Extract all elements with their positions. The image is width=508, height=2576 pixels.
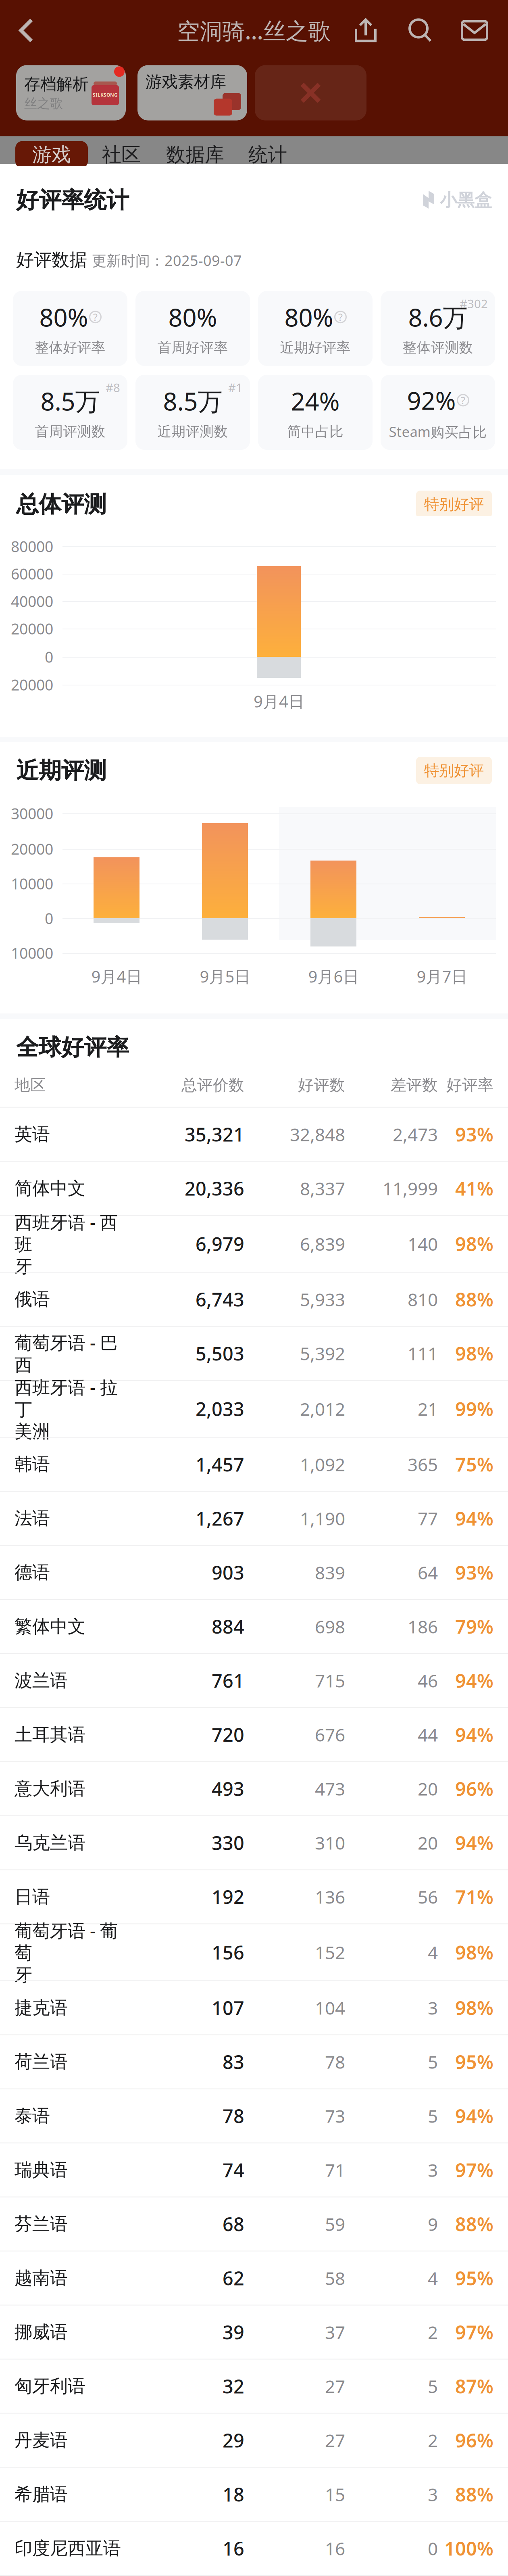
staticText: 4 (428, 2266, 438, 2290)
button[interactable]: Tools (255, 65, 366, 120)
staticText: 4 (428, 1940, 438, 1964)
staticText: 884 (212, 1614, 244, 1639)
staticText: 32,848 (290, 1123, 345, 1146)
staticText: 39 (223, 2320, 244, 2345)
staticText: 79% (455, 1614, 493, 1639)
staticText: 1,267 (196, 1506, 244, 1531)
staticText: 日语 (15, 1886, 50, 1908)
staticText: 94% (455, 1668, 493, 1693)
staticText: 78 (223, 2103, 244, 2128)
staticText: 30000 (11, 803, 53, 823)
staticText: 93% (455, 1560, 493, 1585)
staticText: 1,190 (300, 1507, 345, 1530)
staticText: 59 (325, 2212, 345, 2236)
button[interactable]: 数据库 (155, 141, 235, 168)
staticText: 15 (325, 2483, 345, 2506)
staticText: 56 (418, 1885, 438, 1909)
staticText: 62 (223, 2266, 244, 2291)
staticText: 75% (455, 1452, 493, 1477)
staticText: 839 (315, 1561, 345, 1584)
staticText: 21 (418, 1397, 438, 1421)
staticText: 总体评测 (16, 490, 106, 518)
staticText: 16 (223, 2536, 244, 2561)
staticText: 9月5日 (200, 966, 251, 987)
staticText: 捷克语 (15, 1997, 68, 2019)
staticText: 简中占比 (287, 423, 344, 440)
staticText: 荷兰语 (15, 2051, 68, 2073)
staticText: 24% (291, 384, 340, 417)
staticText: 特别好评 (424, 761, 484, 780)
staticText: 空洞骑…丝之歌 (177, 15, 331, 45)
staticText: 9月4日 (254, 690, 304, 712)
staticText: 698 (315, 1615, 345, 1638)
staticText: 32 (223, 2374, 244, 2399)
staticText: 58 (325, 2266, 345, 2290)
button[interactable]: Back (0, 4, 52, 57)
staticText: 更新时间：2025-09-07 (92, 251, 242, 270)
staticText: 365 (408, 1453, 438, 1476)
staticText: 繁体中文 (15, 1616, 85, 1637)
staticText: SILKSONG (93, 92, 118, 98)
staticText: 64 (418, 1561, 438, 1584)
staticText: 5,503 (196, 1341, 244, 1366)
staticText: 20,336 (185, 1176, 244, 1201)
staticText: 小黑盒 (440, 190, 492, 211)
staticText: 97% (455, 2157, 493, 2182)
staticText: 总评价数 (181, 1076, 244, 1095)
button[interactable]: 存档解析 (16, 65, 126, 120)
staticText: 96% (455, 2428, 493, 2453)
button[interactable]: 游戏 (15, 141, 88, 168)
staticText: ? (93, 310, 98, 324)
staticText: 6,839 (300, 1232, 345, 1256)
staticText: 1,092 (300, 1453, 345, 1476)
staticText: 10000 (11, 874, 53, 894)
staticText: 5 (428, 2374, 438, 2398)
staticText: 676 (315, 1723, 345, 1746)
staticText: 西班牙语 - 西班 牙 (15, 1210, 118, 1277)
staticText: 80% (39, 301, 88, 333)
staticText: 3 (428, 2483, 438, 2506)
staticText: 88% (455, 1287, 493, 1312)
staticText: 104 (315, 1996, 345, 2020)
staticText: 88% (455, 2482, 493, 2507)
staticText: 95% (455, 2266, 493, 2291)
button[interactable]: Search (396, 6, 444, 55)
button[interactable]: 统计 (235, 141, 300, 168)
staticText: 近期评测 (16, 757, 106, 784)
staticText: 8,337 (300, 1177, 345, 1200)
staticText: ? (461, 393, 465, 407)
staticText: 330 (212, 1830, 244, 1855)
staticText: #8 (106, 380, 120, 395)
staticText: 全球好评率 (16, 1033, 129, 1061)
staticText: 11,999 (383, 1177, 438, 1200)
staticText: 94% (455, 1830, 493, 1855)
button[interactable]: 游戏素材库 (137, 65, 247, 120)
staticText: 94% (455, 1722, 493, 1747)
staticText: 35,321 (185, 1122, 244, 1147)
staticText: 法语 (15, 1507, 50, 1529)
staticText: #1 (228, 380, 243, 395)
staticText: 数据库 (166, 143, 224, 167)
staticText: 8.5万 (41, 384, 100, 417)
staticText: 0 (45, 908, 53, 928)
staticText: 5,392 (300, 1342, 345, 1365)
staticText: 丝之歌 (24, 96, 63, 111)
staticText: 20000 (11, 839, 53, 859)
staticText: 80% (284, 301, 333, 333)
staticText: 好评数 (298, 1076, 345, 1095)
staticText: 6,743 (196, 1287, 244, 1312)
staticText: 810 (408, 1288, 438, 1311)
staticText: 95% (455, 2049, 493, 2074)
staticText: 100% (444, 2536, 493, 2561)
button[interactable]: Share (341, 6, 390, 55)
staticText: 3 (428, 1996, 438, 2020)
staticText: 简体中文 (15, 1177, 85, 1199)
staticText: 71% (455, 1884, 493, 1909)
staticText: 特别好评 (424, 495, 484, 514)
staticText: 310 (315, 1831, 345, 1855)
staticText: #302 (460, 296, 488, 311)
staticText: 40000 (11, 591, 53, 611)
button[interactable]: Mail (450, 6, 499, 55)
staticText: ? (338, 310, 343, 324)
button[interactable]: 社区 (88, 141, 155, 168)
